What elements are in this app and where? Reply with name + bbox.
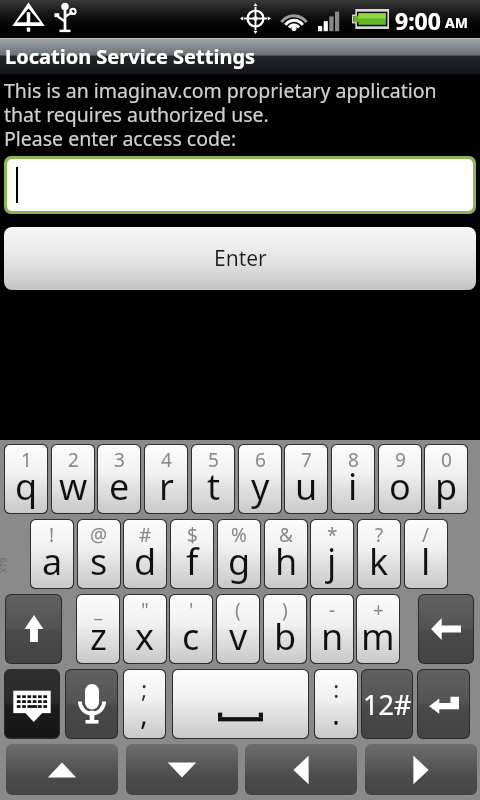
staticText: ) <box>282 597 288 623</box>
button[interactable]: # <box>124 520 166 588</box>
staticText: Enter <box>214 244 267 273</box>
staticText: * <box>327 522 338 548</box>
staticText: 8 <box>348 447 359 473</box>
staticText: ? <box>375 522 384 548</box>
staticText: : <box>333 672 340 705</box>
button[interactable]: ' <box>170 595 212 663</box>
staticText: " <box>141 597 149 623</box>
staticText: f <box>186 537 199 586</box>
button[interactable]: % <box>218 520 260 588</box>
button[interactable]: 3 <box>98 445 140 513</box>
staticText: m <box>361 612 395 661</box>
staticText: q <box>15 462 38 511</box>
staticText: This is an imaginav.com proprietary appl… <box>4 77 476 151</box>
staticText: b <box>274 612 297 661</box>
staticText: 0 <box>441 447 452 473</box>
staticText: y <box>251 462 270 511</box>
button[interactable]: ! <box>31 520 73 588</box>
button[interactable]: 0 <box>425 445 467 513</box>
button[interactable]: - <box>311 595 353 663</box>
button[interactable]: Left <box>245 744 357 795</box>
staticText: & <box>279 522 293 548</box>
staticText: ! <box>49 522 55 548</box>
staticText: r <box>159 462 174 511</box>
staticText: ; <box>141 672 148 705</box>
button[interactable]: / <box>405 520 447 588</box>
button[interactable]: Down <box>126 744 238 795</box>
staticText: 2 <box>68 447 79 473</box>
button[interactable]: $ <box>171 520 213 588</box>
staticText: 7 <box>301 447 312 473</box>
staticText: 9:00 <box>395 5 441 36</box>
button[interactable]: 1 <box>5 445 47 513</box>
button[interactable]: 4 <box>145 445 187 513</box>
staticText: z <box>90 612 107 661</box>
staticText: 5 <box>208 447 219 473</box>
staticText: h <box>275 537 298 586</box>
button[interactable]: Voice input <box>66 670 117 738</box>
button[interactable]: : <box>315 670 357 738</box>
staticText: d <box>134 537 157 586</box>
staticText: % <box>231 522 247 548</box>
button[interactable] <box>7 159 473 211</box>
staticText: 1 <box>21 447 32 473</box>
button[interactable]: Backspace <box>419 595 473 663</box>
staticText: p <box>435 462 458 511</box>
staticText: j <box>327 537 337 586</box>
staticText: # <box>139 522 152 548</box>
staticText: a <box>42 537 63 586</box>
staticText: x <box>135 612 155 661</box>
staticText: u <box>295 462 318 511</box>
staticText: 3 <box>114 447 125 473</box>
button[interactable]: Hide keyboard <box>5 670 59 738</box>
staticText: c <box>182 612 200 661</box>
staticText: / <box>422 522 430 548</box>
button[interactable]: 9 <box>379 445 421 513</box>
button[interactable]: 6 <box>239 445 281 513</box>
staticText: . <box>332 693 341 734</box>
staticText: + <box>373 597 384 623</box>
staticText: i <box>348 462 358 511</box>
button[interactable]: + <box>357 595 399 663</box>
staticText: e <box>109 462 130 511</box>
button[interactable]: _ <box>77 595 119 663</box>
button[interactable]: 5 <box>192 445 234 513</box>
staticText: k <box>369 537 389 586</box>
staticText: n <box>321 612 344 661</box>
button[interactable]: Right <box>365 744 477 795</box>
button[interactable]: ; <box>124 670 165 738</box>
button[interactable]: * <box>311 520 353 588</box>
button[interactable]: Up <box>6 744 118 795</box>
staticText: XT9 <box>0 557 9 573</box>
button[interactable]: Enter <box>418 670 469 738</box>
button[interactable]: ? <box>358 520 400 588</box>
staticText: o <box>389 462 411 511</box>
button[interactable]: ) <box>264 595 306 663</box>
button[interactable] <box>173 670 308 738</box>
button[interactable]: 12# <box>362 670 412 738</box>
staticText: ' <box>189 597 194 623</box>
button[interactable]: 7 <box>285 445 327 513</box>
button[interactable]: 2 <box>52 445 94 513</box>
staticText: - <box>329 597 336 623</box>
staticText: g <box>228 537 251 586</box>
staticText: $ <box>187 522 198 548</box>
button[interactable]: & <box>265 520 307 588</box>
button[interactable]: " <box>124 595 166 663</box>
button[interactable]: Shift <box>6 595 61 663</box>
staticText: t <box>207 462 220 511</box>
staticText: 6 <box>255 447 266 473</box>
staticText: _ <box>94 597 103 623</box>
staticText: 9 <box>395 447 406 473</box>
staticText: AM <box>445 13 468 32</box>
button[interactable]: Enter <box>4 227 476 290</box>
staticText: Location Service Settings <box>5 43 256 70</box>
staticText: v <box>229 612 248 661</box>
staticText: ( <box>235 597 241 623</box>
button[interactable]: ( <box>217 595 259 663</box>
staticText: l <box>421 537 431 586</box>
staticText: 12# <box>363 686 412 723</box>
button[interactable]: @ <box>78 520 120 588</box>
button[interactable]: 8 <box>332 445 374 513</box>
staticText: w <box>59 462 88 511</box>
